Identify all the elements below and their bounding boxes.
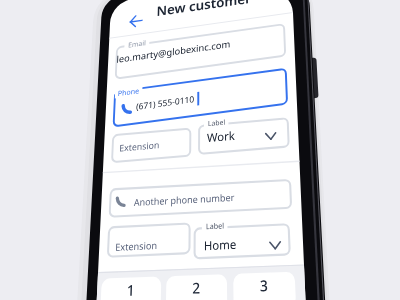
- staticText: Email: [124, 35, 144, 45]
- staticText: leo.marty@globexinc.com: [112, 47, 234, 61]
- button[interactable]: [111, 137, 193, 166]
- button[interactable]: [170, 277, 228, 300]
- staticText: 3: [259, 279, 267, 297]
- button[interactable]: [111, 40, 292, 76]
- staticText: 2: [195, 279, 203, 297]
- button[interactable]: [200, 135, 292, 165]
- staticText: Work: [209, 141, 238, 157]
- button[interactable]: [111, 229, 193, 258]
- button[interactable]: [107, 277, 165, 300]
- staticText: (671) 555-0110: [135, 102, 196, 114]
- staticText: New customer: [154, 0, 257, 16]
- staticText: Another phone number: [136, 201, 237, 213]
- button[interactable]: [124, 7, 139, 22]
- button[interactable]: [196, 234, 289, 263]
- staticText: Extension: [119, 242, 161, 254]
- button[interactable]: [111, 88, 292, 126]
- staticText: Extension: [119, 145, 161, 157]
- staticText: Phone: [115, 86, 138, 96]
- button[interactable]: [234, 277, 292, 300]
- staticText: Label: [210, 130, 228, 139]
- button[interactable]: [111, 193, 292, 221]
- staticText: Home: [206, 243, 238, 258]
